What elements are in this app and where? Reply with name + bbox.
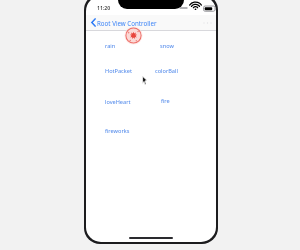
button[interactable]: Particle emitter bbox=[124, 26, 143, 45]
button[interactable]: HotPacket bbox=[104, 66, 133, 76]
staticText: fire bbox=[161, 97, 170, 105]
staticText: 11:20 bbox=[97, 4, 111, 11]
other: Back bbox=[91, 18, 96, 27]
button[interactable]: colorBall bbox=[154, 66, 179, 76]
button[interactable]: fireworks bbox=[104, 126, 131, 136]
button[interactable]: rain bbox=[104, 41, 117, 51]
staticText: loveHeart bbox=[105, 98, 131, 106]
staticText: rain bbox=[105, 42, 116, 50]
staticText: colorBall bbox=[155, 67, 178, 75]
staticText: fireworks bbox=[105, 127, 130, 135]
button[interactable]: snow bbox=[159, 41, 175, 51]
button[interactable]: fire bbox=[160, 96, 171, 106]
staticText: HotPacket bbox=[105, 67, 132, 75]
staticText: Root View Controller bbox=[97, 19, 157, 27]
button[interactable]: loveHeart bbox=[104, 97, 132, 107]
staticText: snow bbox=[160, 42, 174, 50]
button[interactable]: Back bbox=[89, 17, 159, 28]
